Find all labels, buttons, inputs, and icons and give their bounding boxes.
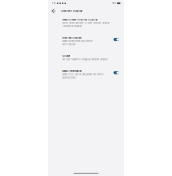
staticText: Set your favourite image as Ambient disp…: [62, 58, 107, 61]
button[interactable]: When to show Ambient display: [48, 18, 124, 36]
button[interactable]: Sticker: [48, 54, 124, 69]
staticText: Show title, artist and album art while: [62, 73, 103, 76]
staticText: (Always-on display): [62, 25, 82, 28]
staticText: notifications: [62, 43, 75, 46]
staticText: 82%: [112, 2, 116, 4]
staticText: Select when and how to show Ambient disp…: [62, 22, 109, 24]
button[interactable]: Music information: [48, 69, 124, 88]
staticText: 9:41: [52, 2, 56, 4]
staticText: Sticker: [62, 54, 70, 57]
button[interactable]: Back: [50, 7, 58, 15]
staticText: Wake screen when you receive: [62, 40, 92, 43]
button[interactable]: New notifications: [48, 36, 124, 54]
staticText: When to show Ambient display: [62, 18, 97, 21]
staticText: Music information: [62, 69, 81, 72]
staticText: New notifications: [62, 36, 81, 39]
staticText: playing music: [62, 76, 76, 79]
staticText: Ambient display: [61, 9, 82, 12]
